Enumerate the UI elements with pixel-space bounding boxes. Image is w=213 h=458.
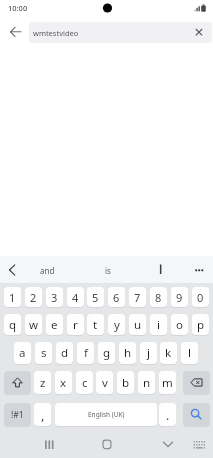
staticText: 6 <box>113 290 120 305</box>
button[interactable]: s <box>35 342 52 364</box>
staticText: u <box>134 317 142 333</box>
button[interactable] <box>183 371 210 394</box>
staticText: c <box>82 375 88 391</box>
button[interactable]: x <box>55 371 72 394</box>
staticText: 4 <box>72 290 79 305</box>
button[interactable]: z <box>34 371 51 394</box>
staticText: j <box>147 345 150 361</box>
staticText: m <box>162 375 173 391</box>
button[interactable] <box>4 261 21 279</box>
button[interactable]: q <box>4 314 21 335</box>
button[interactable]: m <box>159 371 176 394</box>
button[interactable]: English (UK) <box>55 403 157 426</box>
button[interactable]: l <box>181 342 198 364</box>
staticText: 9 <box>176 290 183 305</box>
staticText: w <box>29 317 39 333</box>
button[interactable]: v <box>96 371 113 394</box>
button[interactable]: t <box>87 314 104 335</box>
staticText: r <box>73 317 78 333</box>
staticText: n <box>143 375 151 391</box>
staticText: t <box>93 317 98 333</box>
staticText: x <box>60 375 67 391</box>
button[interactable]: j <box>140 342 157 364</box>
staticText: 3 <box>51 290 58 305</box>
button[interactable]: . <box>159 403 176 426</box>
button[interactable]: w <box>25 314 42 335</box>
staticText: English (UK) <box>88 410 125 419</box>
button[interactable]: and <box>27 262 67 278</box>
button[interactable]: 2 <box>25 287 42 307</box>
button[interactable]: 0 <box>192 287 209 307</box>
button[interactable]: 5 <box>87 287 104 307</box>
staticText: 10:00 <box>8 3 28 13</box>
button[interactable]: c <box>76 371 93 394</box>
staticText: is <box>105 265 111 276</box>
button[interactable]: o <box>171 314 188 335</box>
button[interactable] <box>7 23 24 40</box>
button[interactable] <box>192 26 206 40</box>
staticText: , <box>41 406 45 424</box>
button[interactable]: d <box>56 342 73 364</box>
button[interactable]: 6 <box>108 287 125 307</box>
button[interactable]: 9 <box>171 287 188 307</box>
button[interactable]: i <box>150 314 167 335</box>
button[interactable] <box>146 260 175 279</box>
button[interactable]: !#1 <box>4 403 31 426</box>
button[interactable]: h <box>119 342 136 364</box>
staticText: k <box>165 345 172 361</box>
button[interactable] <box>36 434 58 454</box>
button[interactable]: 7 <box>129 287 146 307</box>
button[interactable]: e <box>46 314 63 335</box>
button[interactable]: g <box>98 342 115 364</box>
staticText: q <box>9 317 17 333</box>
staticText: wmtestvideo <box>33 28 79 38</box>
button[interactable] <box>183 403 210 426</box>
staticText: d <box>61 345 69 361</box>
button[interactable]: 4 <box>67 287 84 307</box>
staticText: i <box>157 317 160 333</box>
button[interactable] <box>186 434 206 454</box>
button[interactable]: is <box>90 262 126 278</box>
button[interactable]: u <box>129 314 146 335</box>
staticText: !#1 <box>11 409 24 421</box>
button[interactable]: a <box>14 342 31 364</box>
staticText: z <box>40 375 46 391</box>
staticText: o <box>176 317 183 333</box>
button[interactable] <box>95 434 117 454</box>
button[interactable] <box>189 261 208 279</box>
staticText: 5 <box>92 290 99 305</box>
button[interactable]: p <box>192 314 209 335</box>
staticText: b <box>122 375 130 391</box>
staticText: h <box>124 345 132 361</box>
staticText: and <box>40 265 55 276</box>
button[interactable]: 8 <box>150 287 167 307</box>
button[interactable]: n <box>138 371 155 394</box>
staticText: s <box>41 345 47 361</box>
staticText: a <box>19 345 26 361</box>
staticText: 1 <box>9 290 16 305</box>
staticText: 8 <box>155 290 162 305</box>
staticText: 7 <box>134 290 141 305</box>
button[interactable]: 1 <box>4 287 21 307</box>
button[interactable] <box>157 434 179 454</box>
button[interactable]: r <box>67 314 84 335</box>
staticText: . <box>166 407 170 423</box>
button[interactable] <box>29 22 212 43</box>
button[interactable]: b <box>117 371 134 394</box>
staticText: 2 <box>30 290 37 305</box>
staticText: e <box>51 317 58 333</box>
staticText: 0 <box>197 290 204 305</box>
button[interactable]: 3 <box>46 287 63 307</box>
button[interactable]: k <box>160 342 177 364</box>
staticText: v <box>102 375 108 391</box>
button[interactable] <box>4 371 31 394</box>
staticText: l <box>188 345 191 361</box>
button[interactable]: y <box>108 314 125 335</box>
button[interactable]: , <box>34 403 51 426</box>
staticText: f <box>84 345 88 361</box>
staticText: g <box>103 345 111 361</box>
staticText: p <box>197 317 205 333</box>
button[interactable]: f <box>77 342 94 364</box>
staticText: y <box>114 317 120 333</box>
